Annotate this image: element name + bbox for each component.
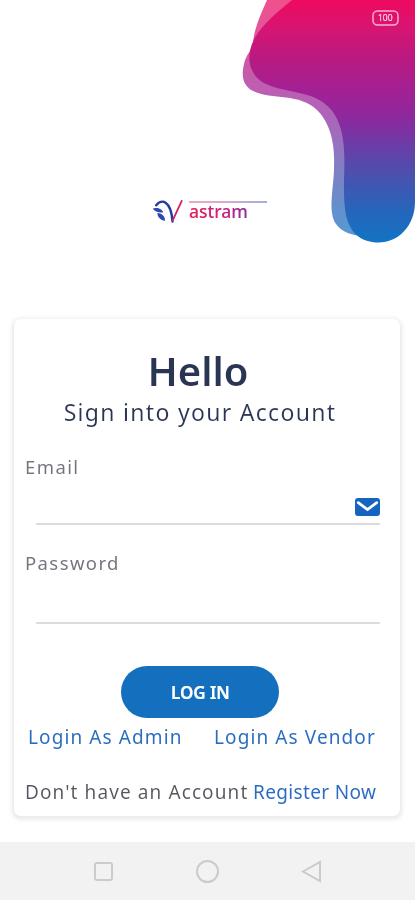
button[interactable]: LOG IN [121, 666, 279, 718]
staticText: 100 [378, 12, 393, 24]
staticText: Hello [14, 343, 391, 397]
button[interactable]: Login As Admin [28, 724, 183, 750]
staticText: Email [25, 454, 80, 479]
staticText: LOG IN [171, 681, 230, 704]
staticText: astram [189, 199, 248, 223]
button[interactable]: Home [185, 849, 229, 893]
other: Battery 100 percent [373, 11, 398, 25]
staticText: Sign into your Account [14, 396, 393, 427]
button[interactable]: Back [289, 849, 333, 893]
button[interactable]: Email [355, 498, 380, 516]
staticText: Password [25, 550, 120, 575]
button[interactable]: Recent apps [81, 849, 125, 893]
button[interactable]: Login As Vendor [214, 724, 376, 750]
button[interactable]: Register Now [253, 779, 377, 805]
staticText: Don't have an Account [25, 779, 249, 805]
